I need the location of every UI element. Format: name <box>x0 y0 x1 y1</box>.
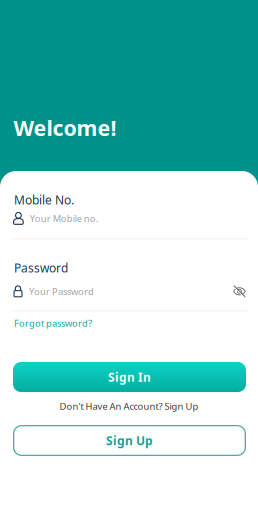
button[interactable]: Sign Up <box>13 425 246 456</box>
button[interactable]: Forgot password? <box>14 317 92 329</box>
staticText: Forgot password? <box>14 317 92 329</box>
staticText: Sign Up <box>106 432 153 448</box>
button[interactable]: Show password <box>233 285 246 298</box>
staticText: Welcome! <box>13 113 116 142</box>
button[interactable]: Sign In <box>13 362 246 392</box>
staticText: Don't Have An Account? Sign Up <box>59 400 198 412</box>
staticText: Your Password <box>29 285 94 297</box>
staticText: Password <box>14 260 68 276</box>
staticText: Your Mobile no. <box>30 212 99 225</box>
staticText: Sign In <box>108 369 151 385</box>
staticText: Mobile No. <box>14 192 74 208</box>
